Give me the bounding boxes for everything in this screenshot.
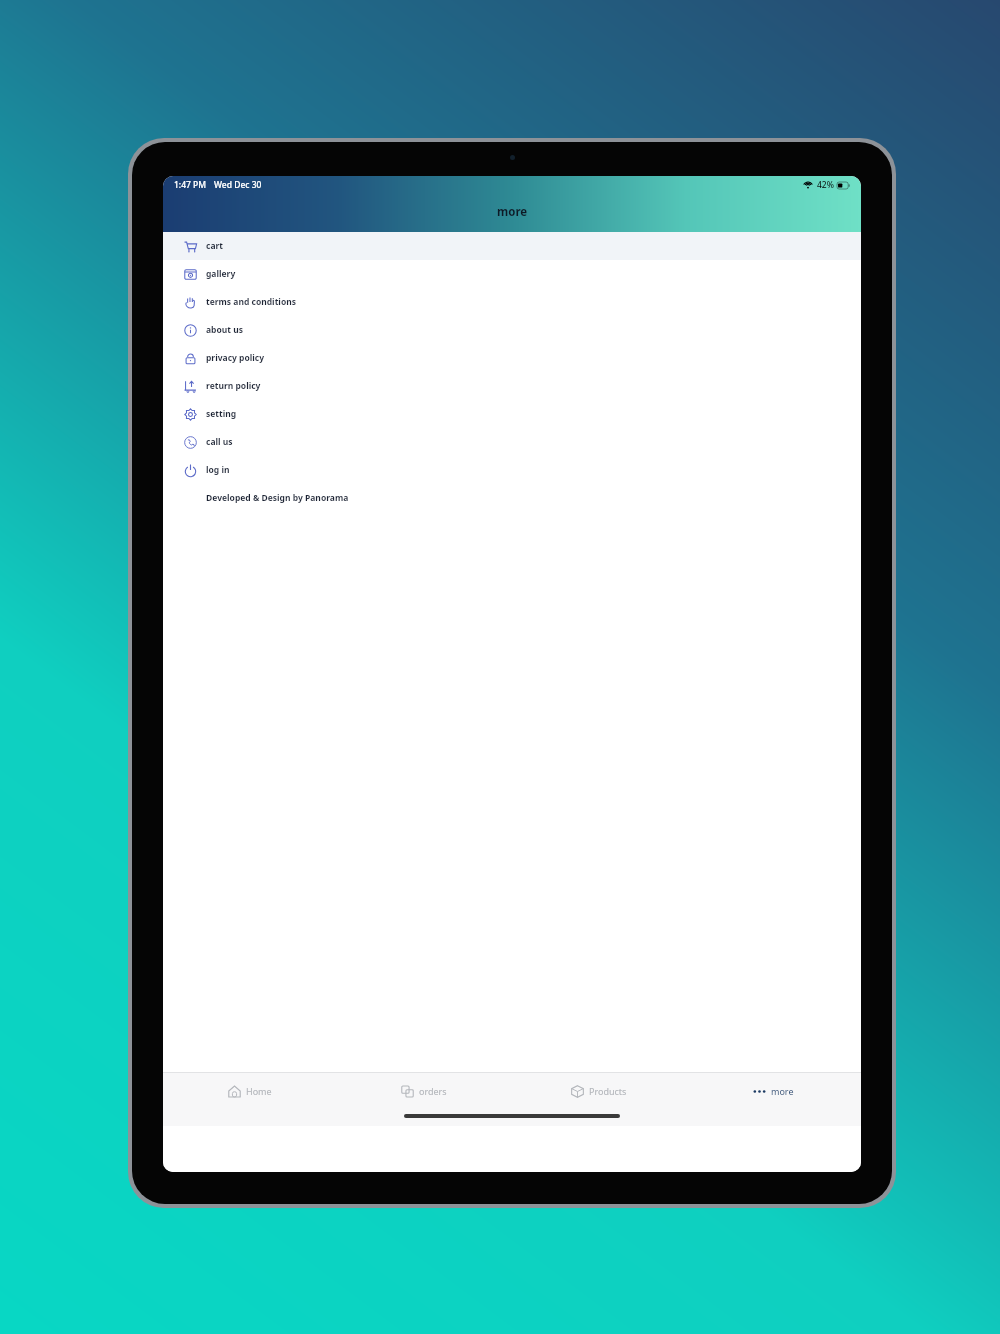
button[interactable]: return policy — [163, 372, 861, 400]
staticText: setting — [206, 408, 237, 420]
button[interactable]: log in — [163, 456, 861, 484]
staticText: 1:47 PM — [174, 179, 207, 191]
button[interactable]: call us — [163, 428, 861, 456]
staticText: call us — [206, 436, 233, 448]
staticText: Products — [589, 1085, 627, 1097]
button[interactable]: gallery — [163, 260, 861, 288]
button[interactable]: more — [686, 1073, 861, 1109]
staticText: more — [771, 1085, 794, 1097]
staticText: about us — [206, 324, 243, 336]
staticText: orders — [419, 1085, 447, 1097]
staticText: Developed & Design by Panorama — [206, 492, 349, 504]
staticText: more — [497, 204, 528, 220]
staticText: privacy policy — [206, 352, 265, 364]
button[interactable]: terms and conditions — [163, 288, 861, 316]
staticText: Home — [246, 1085, 272, 1097]
button[interactable]: setting — [163, 400, 861, 428]
button[interactable]: privacy policy — [163, 344, 861, 372]
staticText: return policy — [206, 380, 261, 392]
button[interactable]: Products — [511, 1073, 686, 1109]
staticText: cart — [206, 240, 223, 252]
staticText: 42% — [817, 179, 834, 191]
staticText: terms and conditions — [206, 296, 296, 308]
staticText: log in — [206, 464, 230, 476]
button[interactable]: about us — [163, 316, 861, 344]
staticText: gallery — [206, 268, 236, 280]
button[interactable]: Home — [163, 1073, 337, 1109]
staticText: Wed Dec 30 — [214, 179, 262, 191]
button[interactable]: cart — [163, 232, 861, 260]
button[interactable]: orders — [337, 1073, 511, 1109]
